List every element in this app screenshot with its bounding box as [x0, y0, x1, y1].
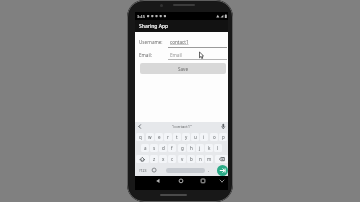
button[interactable]: c	[168, 155, 176, 163]
staticText: j	[199, 145, 201, 151]
button[interactable]: h	[187, 144, 195, 152]
button[interactable]: b	[187, 155, 195, 163]
button[interactable]: z	[150, 155, 158, 163]
button[interactable]: k	[205, 144, 213, 152]
staticText: Email	[170, 52, 182, 58]
button[interactable]: “contact1”	[135, 122, 228, 131]
button[interactable]: p	[219, 133, 227, 141]
button[interactable]	[154, 177, 162, 185]
button[interactable]: d	[159, 144, 167, 152]
button[interactable]: Sharing App	[135, 20, 228, 32]
button[interactable]: .	[205, 166, 213, 174]
staticText: r	[167, 134, 169, 140]
staticText: s	[153, 145, 156, 151]
button[interactable]: a	[141, 144, 149, 152]
staticText: c	[171, 156, 174, 162]
button[interactable]: v	[178, 155, 186, 163]
button[interactable]: q	[136, 133, 144, 141]
staticText: m	[207, 156, 212, 162]
button[interactable]: r	[164, 133, 172, 141]
staticText: f	[171, 145, 173, 151]
button[interactable]	[166, 168, 205, 173]
button[interactable]: Save	[140, 63, 226, 74]
button[interactable]	[217, 165, 228, 176]
staticText: e	[158, 134, 161, 140]
button[interactable]: i	[200, 133, 208, 141]
staticText: .	[208, 167, 210, 174]
staticText: p	[222, 134, 225, 140]
staticText: “contact1”	[172, 124, 192, 130]
staticText: n	[199, 156, 202, 162]
button[interactable]: y	[182, 133, 190, 141]
button[interactable]: t	[173, 133, 181, 141]
staticText: contact1	[170, 39, 189, 45]
button[interactable]: contact1	[168, 36, 227, 47]
staticText: w	[148, 134, 152, 140]
staticText: 3:45	[137, 14, 145, 19]
button[interactable]: s	[150, 144, 158, 152]
button[interactable]: n	[196, 155, 204, 163]
staticText: q	[139, 134, 142, 140]
button[interactable]: x	[159, 155, 167, 163]
button[interactable]	[150, 166, 158, 174]
staticText: a	[144, 145, 147, 151]
staticText: t	[176, 134, 178, 140]
staticText: z	[153, 156, 156, 162]
button[interactable]: g	[178, 144, 186, 152]
button[interactable]	[177, 177, 185, 185]
button[interactable]: u	[191, 133, 199, 141]
staticText: v	[181, 156, 184, 162]
staticText: Email:	[139, 52, 153, 58]
staticText: b	[190, 156, 193, 162]
button[interactable]: m	[205, 155, 213, 163]
button[interactable]	[136, 155, 149, 163]
button[interactable]: f	[168, 144, 176, 152]
staticText: i	[203, 134, 205, 140]
staticText: k	[208, 145, 211, 151]
staticText: o	[213, 134, 216, 140]
staticText: y	[185, 134, 188, 140]
staticText: g	[181, 145, 184, 151]
staticText: d	[162, 145, 165, 151]
staticText: ?123	[139, 168, 147, 173]
staticText: Username:	[139, 39, 163, 45]
button[interactable]: o	[210, 133, 218, 141]
staticText: u	[194, 134, 197, 140]
button[interactable]: l	[214, 144, 222, 152]
staticText: x	[162, 156, 165, 162]
button[interactable]: w	[146, 133, 154, 141]
button[interactable]: Email	[168, 49, 227, 60]
staticText: Save	[178, 66, 189, 72]
button[interactable]	[218, 177, 226, 185]
button[interactable]: e	[155, 133, 163, 141]
button[interactable]: j	[196, 144, 204, 152]
staticText: h	[190, 145, 193, 151]
button[interactable]	[215, 155, 228, 163]
staticText: Sharing App	[139, 23, 169, 30]
button[interactable]: ?123	[136, 166, 149, 174]
button[interactable]	[199, 177, 207, 185]
staticText: l	[217, 145, 219, 151]
